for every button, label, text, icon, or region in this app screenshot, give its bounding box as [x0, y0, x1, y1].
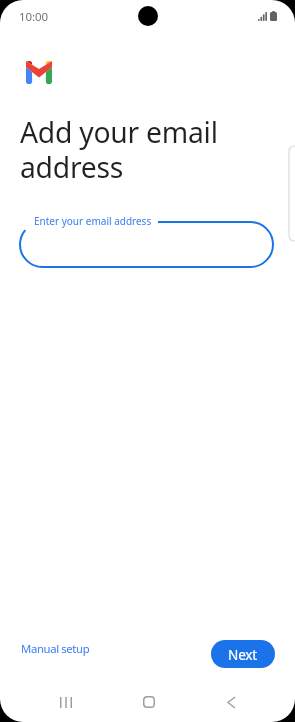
staticText: Add your email address	[20, 113, 218, 186]
staticText: 10:00	[19, 9, 48, 25]
staticText: Manual setup	[21, 641, 90, 656]
staticText: Next	[228, 645, 258, 664]
button[interactable]: Next	[211, 640, 275, 668]
staticText: Enter your email address	[34, 214, 152, 228]
button[interactable]: Back	[190, 682, 273, 722]
button[interactable]: Manual setup	[15, 636, 96, 661]
button[interactable]: Recent apps	[25, 682, 107, 722]
button[interactable]: Home	[107, 682, 190, 722]
